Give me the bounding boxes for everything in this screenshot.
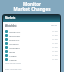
staticText: +1.2%	[52, 42, 58, 45]
staticText: Markets	[5, 16, 16, 19]
staticText: Apple Inc.	[9, 30, 21, 33]
staticText: Watchlist	[5, 24, 17, 27]
staticText: Netflix	[9, 58, 17, 61]
button[interactable]: Amazon	[3, 41, 60, 45]
staticText: Alphabet	[9, 46, 20, 49]
staticText: Total value today	[5, 62, 21, 65]
button[interactable]: Alphabet	[3, 45, 60, 49]
button[interactable]: Meta	[3, 49, 60, 53]
staticText: +1.2%	[52, 54, 58, 57]
button[interactable]: Tesla Inc.	[3, 37, 60, 41]
button[interactable]: Netflix	[3, 57, 60, 61]
staticText: +1.2%	[52, 30, 58, 33]
staticText: See all	[51, 24, 58, 27]
staticText: +1.2%	[52, 34, 58, 37]
button[interactable]: Microsoft	[3, 33, 60, 37]
staticText: Amazon	[9, 42, 19, 45]
staticText: Daily change rate	[5, 68, 22, 71]
staticText: Monitor Market Changes	[0, 1, 64, 12]
staticText: Microsoft	[9, 34, 21, 37]
staticText: Meta	[9, 50, 15, 53]
staticText: Tesla Inc.	[9, 38, 20, 41]
button[interactable]: Nvidia	[3, 53, 60, 57]
staticText: +1.2%	[52, 38, 58, 41]
button[interactable]: Apple Inc.	[3, 29, 60, 33]
button[interactable]: See all	[51, 24, 58, 27]
staticText: +1.2%	[52, 50, 58, 53]
staticText: +1.2%	[52, 46, 58, 49]
staticText: Nvidia	[9, 54, 17, 57]
staticText: +1.2%	[52, 58, 58, 61]
